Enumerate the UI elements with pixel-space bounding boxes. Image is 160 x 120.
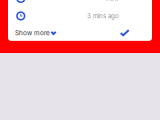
button[interactable]: Show more — [8, 25, 152, 41]
button[interactable]: now — [8, 0, 152, 7]
staticText: Show more — [15, 29, 50, 37]
button[interactable]: 3 mins ago — [8, 7, 152, 25]
staticText: 3 mins ago — [87, 12, 119, 20]
staticText: now — [106, 0, 119, 2]
